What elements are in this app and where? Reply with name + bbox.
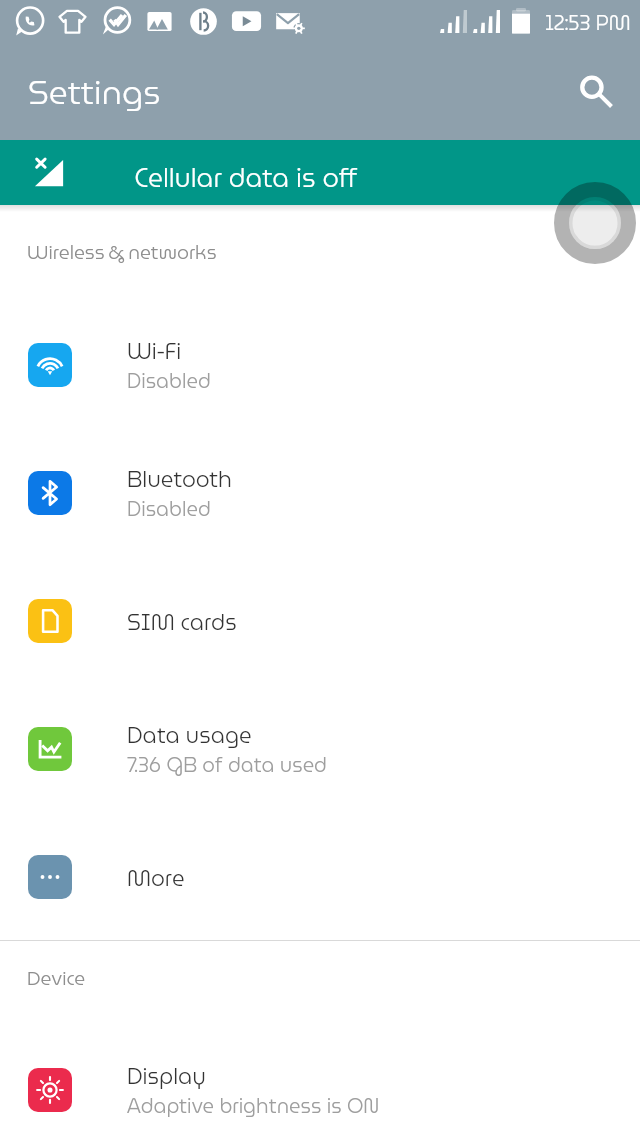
button[interactable]: Search xyxy=(573,68,622,117)
button[interactable]: Wi-Fi xyxy=(0,301,640,429)
staticText: SIM cards xyxy=(127,605,237,640)
button[interactable]: More xyxy=(0,813,640,941)
staticText: Cellular data is off xyxy=(135,157,358,198)
staticText: Wi-Fi xyxy=(127,334,182,369)
button[interactable]: SIM cards xyxy=(0,557,640,685)
staticText: Settings xyxy=(28,66,161,118)
staticText: Adaptive brightness is ON xyxy=(127,1090,380,1122)
staticText: 7.36 GB of data used xyxy=(127,749,327,781)
staticText: Bluetooth xyxy=(127,462,232,497)
staticText: Device xyxy=(27,963,86,993)
button[interactable]: Data usage xyxy=(0,685,640,813)
staticText: Display xyxy=(127,1059,207,1094)
staticText: 12:53 PM xyxy=(545,7,631,39)
button[interactable]: Bluetooth xyxy=(0,429,640,557)
staticText: Wireless & networks xyxy=(27,237,217,267)
staticText: Disabled xyxy=(127,493,211,525)
staticText: More xyxy=(127,861,185,896)
staticText: Disabled xyxy=(127,365,211,397)
button[interactable]: Display xyxy=(0,1026,640,1138)
staticText: Data usage xyxy=(127,718,252,753)
